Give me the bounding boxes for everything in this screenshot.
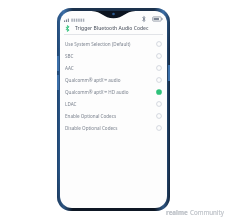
- button[interactable]: Use System Selection (Default): [60, 38, 167, 50]
- staticText: Use System Selection (Default): [65, 41, 153, 47]
- staticText: AAC: [65, 65, 153, 71]
- staticText: SBC: [65, 53, 153, 59]
- staticText: Disable Optional Codecs: [65, 125, 153, 131]
- button[interactable]: Bluetooth: [60, 22, 167, 34]
- button[interactable]: AAC: [60, 62, 167, 74]
- staticText: LDAC: [65, 101, 153, 107]
- staticText: Qualcomm® aptX™ HD audio: [65, 89, 153, 95]
- button[interactable]: Disable Optional Codecs: [60, 122, 167, 134]
- staticText: realme: [166, 208, 188, 216]
- button[interactable]: Qualcomm® aptX™ HD audio: [60, 86, 167, 98]
- staticText: Qualcomm® aptX™ audio: [65, 77, 153, 83]
- other: Bluetooth: [64, 25, 71, 32]
- staticText: Community: [190, 208, 224, 216]
- button[interactable]: SBC: [60, 50, 167, 62]
- staticText: Enable Optional Codecs: [65, 113, 153, 119]
- button[interactable]: LDAC: [60, 98, 167, 110]
- staticText: Trigger Bluetooth Audio Codec Selection: [75, 25, 163, 32]
- button[interactable]: Qualcomm® aptX™ audio: [60, 74, 167, 86]
- button[interactable]: Enable Optional Codecs: [60, 110, 167, 122]
